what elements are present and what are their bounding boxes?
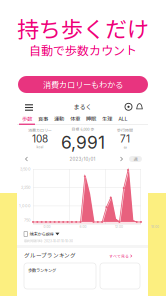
staticText: 71	[120, 133, 130, 145]
staticText: 750	[24, 217, 31, 222]
staticText: 歩行時間	[117, 127, 133, 133]
staticText: 週	[133, 156, 137, 162]
staticText: 12:00	[115, 225, 123, 229]
staticText: 分	[123, 145, 126, 150]
staticText: 2023/10/01	[69, 156, 95, 162]
staticText: まるく	[73, 102, 91, 111]
button[interactable]: 睡眠	[83, 115, 99, 122]
staticText: 消費カロリー	[28, 127, 52, 133]
button[interactable]: 週	[129, 156, 142, 162]
staticText: 1,000	[19, 203, 31, 208]
button[interactable]: Previous day	[23, 155, 30, 162]
staticText: 0:00	[43, 225, 50, 229]
staticText: すべて見る	[109, 253, 129, 259]
staticText: 生理	[102, 115, 112, 122]
staticText: 6:00	[79, 225, 86, 229]
button[interactable]: 歩数ランキング	[24, 263, 96, 289]
staticText: 睡眠	[86, 115, 96, 122]
staticText: 自動で歩数カウント	[29, 41, 137, 59]
staticText: 2,250	[21, 185, 31, 190]
staticText: 最終同期日時: 2023-10-01 10:10:30	[24, 239, 73, 243]
staticText: 歩数ランキング	[28, 267, 56, 273]
button[interactable]: 生理	[99, 115, 115, 122]
button[interactable]: Menu	[24, 103, 34, 111]
button[interactable]: すべて見る	[109, 253, 132, 259]
staticText: ALL	[118, 115, 127, 122]
button[interactable]: ALL	[115, 115, 131, 122]
staticText: 18:00	[151, 225, 159, 229]
staticText: 6,991	[61, 132, 105, 153]
staticText: 運動	[54, 115, 64, 122]
staticText: 108	[32, 133, 48, 145]
staticText: グループランキング	[24, 251, 76, 259]
button[interactable]: 運動	[51, 115, 67, 122]
staticText: 3,500	[20, 167, 31, 171]
button[interactable]: Settings	[124, 103, 133, 111]
staticText: 体重	[70, 115, 80, 122]
button[interactable]: 歩数	[19, 115, 35, 122]
button[interactable]: 体重	[67, 115, 83, 122]
button[interactable]: Notifications	[135, 103, 144, 111]
staticText: 目標 6,000 歩	[71, 126, 94, 132]
button[interactable]: Next day	[118, 155, 125, 162]
staticText: 食事	[38, 115, 48, 122]
staticText: 持ち歩くだけ	[17, 12, 149, 44]
staticText: 消費カロリーもわかる	[43, 78, 123, 90]
staticText: 端末から取得	[29, 231, 53, 237]
staticText: 歩数	[22, 115, 32, 122]
staticText: kcal	[36, 145, 43, 149]
button[interactable]: 食事	[35, 115, 51, 122]
